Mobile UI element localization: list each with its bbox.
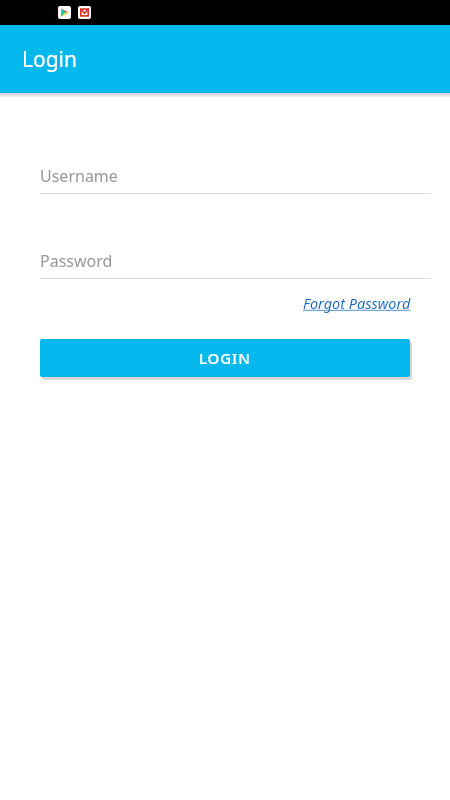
staticText: Username xyxy=(40,165,118,187)
other: Gmail xyxy=(78,6,91,19)
button[interactable]: Password xyxy=(40,250,431,279)
staticText: Login xyxy=(22,45,78,74)
other: Google Play xyxy=(58,6,71,19)
staticText: Forgot Password xyxy=(303,293,411,313)
button[interactable]: Forgot Password xyxy=(301,291,413,315)
button[interactable]: Username xyxy=(40,165,431,194)
staticText: LOGIN xyxy=(199,348,251,368)
button[interactable]: LOGIN xyxy=(40,339,410,377)
staticText: Password xyxy=(40,250,113,272)
